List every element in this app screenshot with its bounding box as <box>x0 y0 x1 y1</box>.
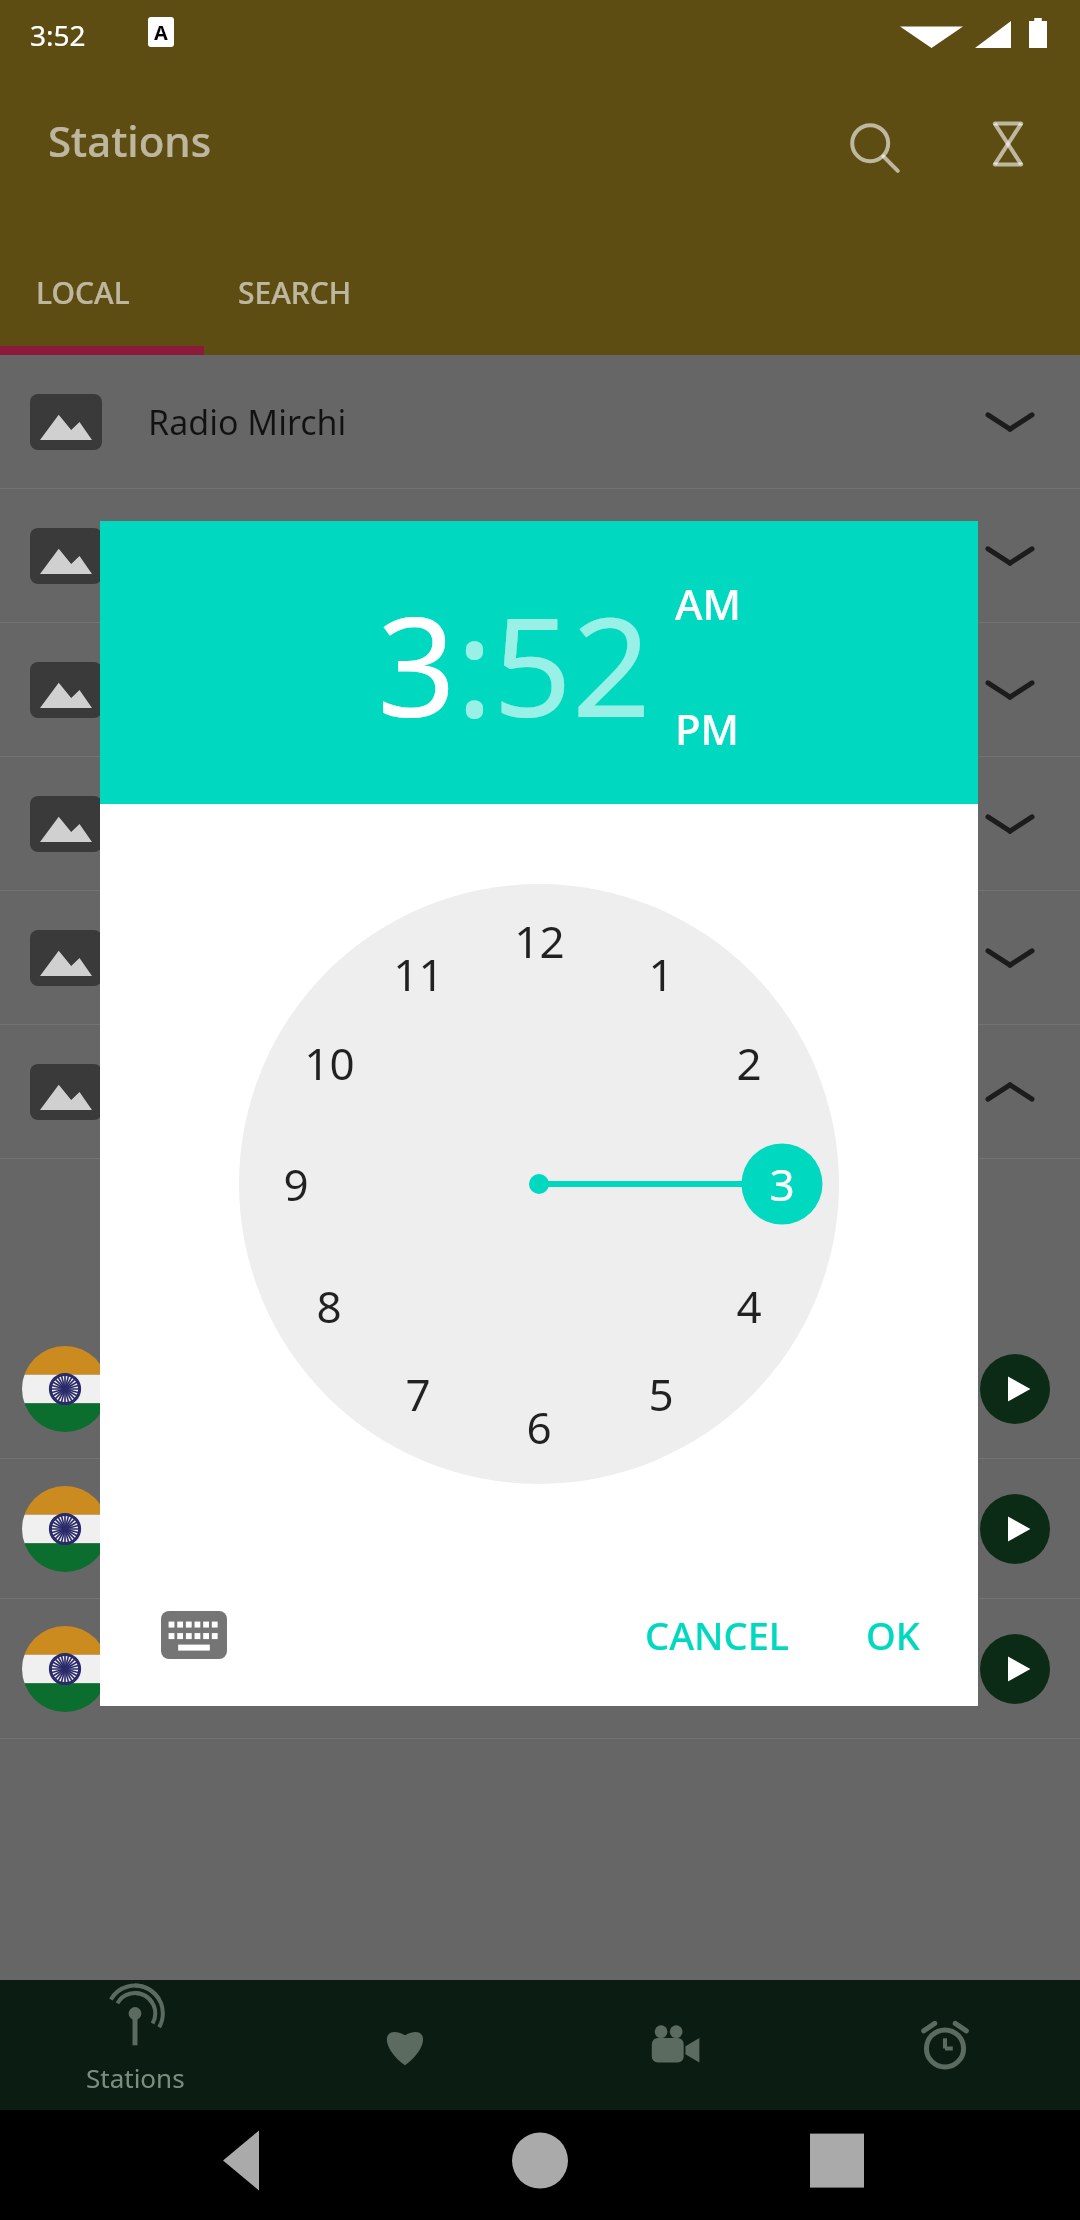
staticText: : <box>456 569 493 757</box>
button[interactable]: Recordings <box>540 1980 810 2110</box>
staticText: 3:52 <box>30 16 86 54</box>
staticText: OK <box>866 1609 920 1661</box>
staticText: 12 <box>514 911 565 971</box>
button[interactable] <box>0 1025 1080 1159</box>
button[interactable]: OK <box>842 1593 944 1677</box>
button[interactable]: 12 <box>491 893 587 989</box>
staticText: Stations <box>48 112 212 169</box>
staticText: SEARCH <box>238 272 352 313</box>
button[interactable]: 90's Super Hits live <box>0 1319 1080 1459</box>
staticText: 2 <box>736 1033 762 1093</box>
staticText: LOCAL <box>36 272 130 313</box>
staticText: CANCEL <box>645 1609 790 1661</box>
staticText: 4 <box>736 1276 762 1336</box>
button[interactable]: 4 <box>701 1258 797 1354</box>
button[interactable]: 6 <box>491 1379 587 1475</box>
button[interactable]: 11 <box>370 926 466 1022</box>
button[interactable]: Search <box>845 118 905 178</box>
button[interactable]: Alarm <box>810 1980 1080 2110</box>
button[interactable]: 7 <box>370 1346 466 1442</box>
button[interactable]: 9 <box>248 1136 344 1232</box>
button[interactable] <box>0 623 1080 757</box>
button[interactable]: Switch to text input <box>158 1599 230 1671</box>
button[interactable]: Stations <box>0 1980 270 2110</box>
staticText: 3 <box>769 1154 795 1214</box>
button[interactable]: PM <box>675 700 740 757</box>
button[interactable]: Sleep timer <box>978 114 1038 174</box>
staticText: 11 <box>393 944 444 1004</box>
staticText: 5 <box>648 1364 674 1424</box>
button[interactable]: Play <box>980 1634 1050 1704</box>
staticText: Stations <box>86 2060 185 2095</box>
staticText: 8 <box>316 1276 342 1336</box>
staticText: A <box>154 19 168 46</box>
button[interactable]: Play <box>980 1354 1050 1424</box>
button[interactable]: 1 <box>613 926 709 1022</box>
button[interactable]: AM <box>675 575 742 632</box>
staticText: 9 <box>283 1154 309 1214</box>
staticText: Radio Mirchi <box>148 399 347 445</box>
button[interactable]: Favorites <box>270 1980 540 2110</box>
staticText: bollywood, hindi <box>130 1396 363 1437</box>
button[interactable]: 8 <box>281 1258 377 1354</box>
button[interactable]: 2 <box>701 1015 797 1111</box>
button[interactable]: 5 <box>613 1346 709 1442</box>
staticText: 7 <box>405 1364 431 1424</box>
staticText: 1 <box>648 944 674 1004</box>
button[interactable] <box>0 757 1080 891</box>
button[interactable]: Play <box>980 1494 1050 1564</box>
button[interactable]: Radio Mirchi <box>0 355 1080 489</box>
button[interactable]: CANCEL <box>621 1593 814 1677</box>
button[interactable] <box>0 891 1080 1025</box>
button[interactable] <box>0 489 1080 623</box>
staticText: 10 <box>304 1033 355 1093</box>
button[interactable]: Oldy Evergreen <box>0 1459 1080 1599</box>
staticText: 90's Super Hits live <box>130 1342 434 1388</box>
staticText: 90's Super Hits live <box>130 1646 434 1692</box>
staticText: 6 <box>526 1397 552 1457</box>
button[interactable]: 3 <box>377 569 456 757</box>
button[interactable]: 90's Super Hits live <box>0 1599 1080 1739</box>
button[interactable]: 10 <box>281 1015 377 1111</box>
button[interactable]: 52 <box>493 569 651 757</box>
button[interactable]: 3 <box>734 1136 830 1232</box>
